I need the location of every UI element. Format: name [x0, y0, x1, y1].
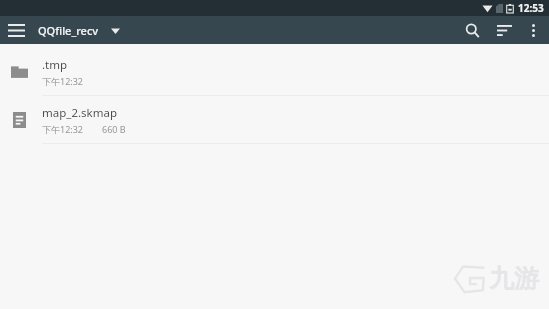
button[interactable]: .tmp: [0, 48, 549, 95]
staticText: .tmp: [42, 57, 68, 73]
staticText: 下午12:32: [42, 75, 84, 87]
staticText: 九游: [489, 263, 539, 294]
button[interactable]: Sort: [488, 16, 520, 44]
staticText: 12:53: [518, 1, 544, 15]
button[interactable]: Open navigation drawer: [0, 16, 32, 44]
button[interactable]: QQfile_recv: [38, 19, 120, 42]
button[interactable]: Search: [456, 16, 488, 44]
staticText: map_2.skmap: [42, 105, 117, 121]
button[interactable]: More options: [520, 16, 546, 44]
staticText: 660 B: [102, 123, 126, 135]
button[interactable]: map_2.skmap: [0, 96, 549, 143]
staticText: QQfile_recv: [38, 23, 99, 38]
staticText: 下午12:32: [42, 123, 84, 135]
